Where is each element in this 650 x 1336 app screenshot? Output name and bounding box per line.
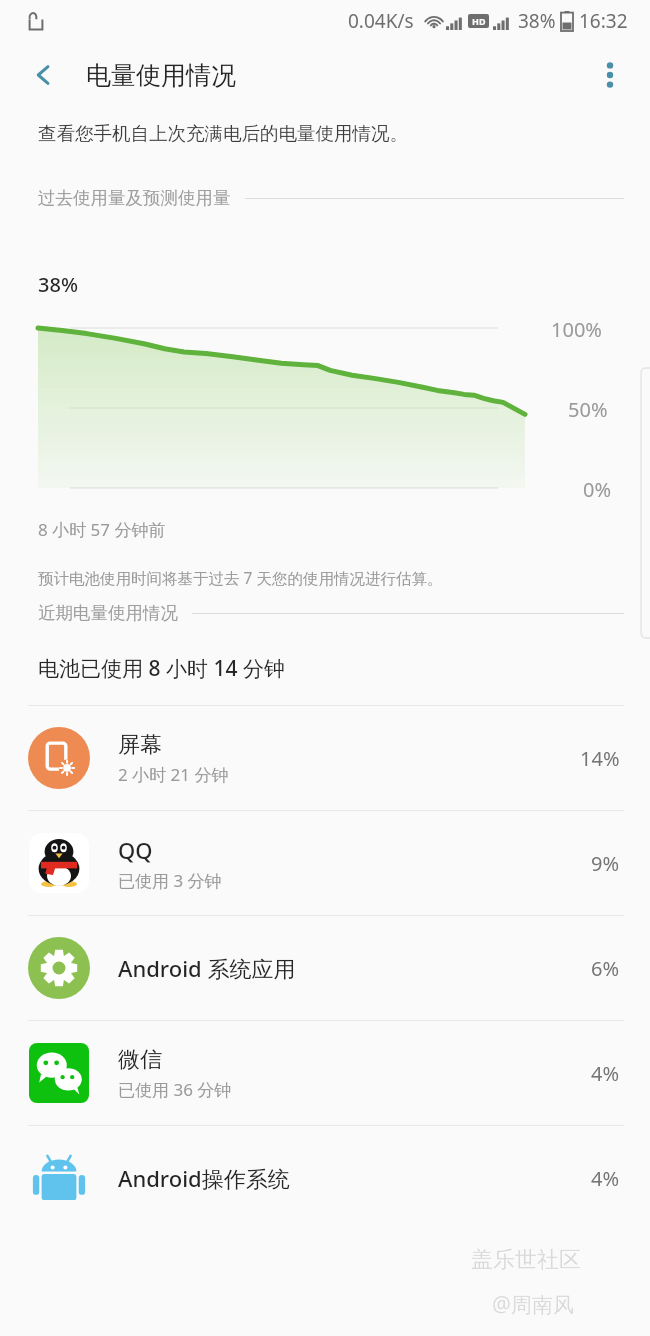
staticText: 4% bbox=[591, 1060, 620, 1087]
staticText: 已使用 36 分钟 bbox=[118, 1078, 232, 1101]
staticText: Android操作系统 bbox=[118, 1163, 290, 1193]
staticText: 已使用 3 分钟 bbox=[118, 869, 222, 892]
staticText: 2 小时 21 分钟 bbox=[118, 763, 229, 786]
staticText: 查看您手机自上次充满电后的电量使用情况。 bbox=[38, 122, 408, 145]
button[interactable]: Android操作系统 bbox=[0, 1126, 650, 1230]
staticText: 电量使用情况 bbox=[86, 60, 236, 91]
button[interactable]: QQ bbox=[0, 811, 650, 915]
staticText: 屏幕 bbox=[118, 731, 162, 759]
staticText: HD bbox=[472, 15, 486, 27]
staticText: 38% bbox=[518, 8, 556, 34]
staticText: 8 小时 57 分钟前 bbox=[38, 518, 166, 541]
staticText: 9% bbox=[591, 850, 620, 877]
staticText: 过去使用量及预测使用量 bbox=[38, 187, 231, 209]
staticText: 微信 bbox=[118, 1046, 162, 1074]
staticText: 100% bbox=[551, 316, 602, 343]
staticText: 14% bbox=[580, 745, 620, 772]
staticText: 近期电量使用情况 bbox=[38, 602, 178, 624]
staticText: QQ bbox=[118, 835, 153, 865]
button[interactable]: More options bbox=[586, 51, 634, 99]
staticText: 盖乐世社区 bbox=[471, 1246, 581, 1274]
staticText: @周南风 bbox=[492, 1290, 574, 1319]
staticText: 0% bbox=[583, 476, 612, 503]
staticText: 电池已使用 8 小时 14 分钟 bbox=[38, 654, 285, 683]
staticText: 0.04K/s bbox=[348, 8, 414, 34]
button[interactable]: Back bbox=[20, 51, 68, 99]
staticText: 38% bbox=[38, 271, 78, 298]
staticText: 50% bbox=[568, 396, 608, 423]
staticText: Android 系统应用 bbox=[118, 953, 296, 983]
button[interactable]: 屏幕 bbox=[0, 706, 650, 810]
staticText: 6% bbox=[591, 955, 620, 982]
staticText: 预计电池使用时间将基于过去 7 天您的使用情况进行估算。 bbox=[38, 567, 443, 588]
button[interactable]: Android 系统应用 bbox=[0, 916, 650, 1020]
button[interactable]: 微信 bbox=[0, 1021, 650, 1125]
staticText: 4% bbox=[591, 1165, 620, 1192]
staticText: 16:32 bbox=[579, 8, 628, 34]
